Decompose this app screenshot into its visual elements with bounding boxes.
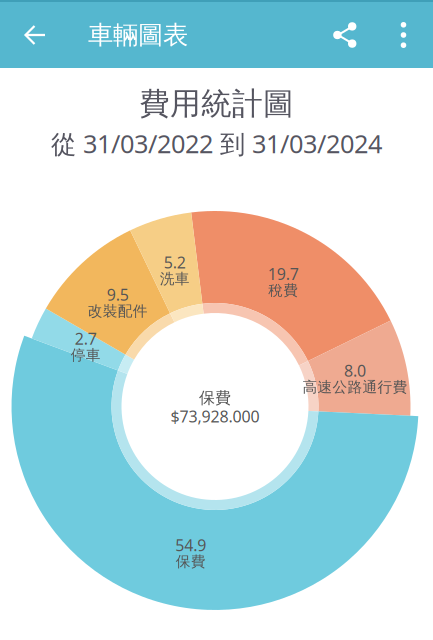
staticText: 保費 <box>176 553 206 571</box>
staticText: 車輛圖表 <box>88 19 188 50</box>
staticText: 19.7 <box>268 263 299 284</box>
staticText: 5.2 <box>164 252 186 273</box>
staticText: 停車 <box>71 346 101 364</box>
button[interactable]: Back <box>0 2 67 68</box>
staticText: 9.5 <box>107 284 129 305</box>
button[interactable]: Share <box>316 2 374 68</box>
staticText: 洗車 <box>160 270 190 288</box>
staticText: 從 31/03/2022 到 31/03/2024 <box>51 127 382 160</box>
staticText: 2.7 <box>75 328 97 349</box>
button[interactable]: More options <box>374 2 433 68</box>
staticText: 8.0 <box>344 360 366 381</box>
staticText: 稅費 <box>268 281 298 299</box>
staticText: 費用統計圖 <box>139 85 294 123</box>
staticText: 改裝配件 <box>88 302 148 320</box>
staticText: 高速公路通行費 <box>302 378 407 396</box>
staticText: $73,928.000 <box>170 406 259 427</box>
staticText: 54.9 <box>175 534 206 556</box>
staticText: 保費 <box>199 388 231 408</box>
